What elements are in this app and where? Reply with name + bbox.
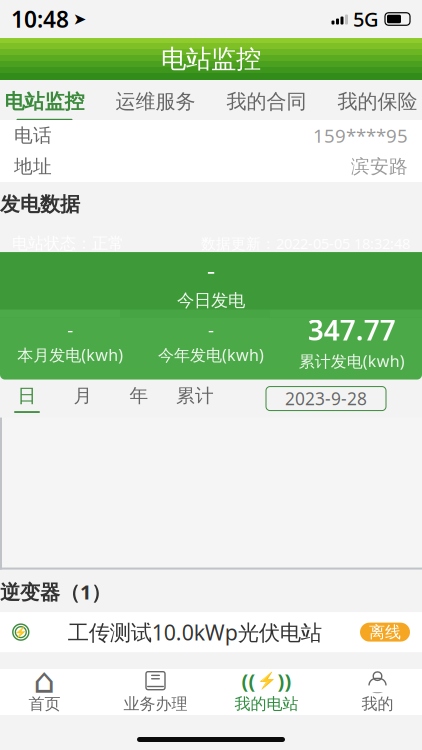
button[interactable]: ⌂ [0,669,100,715]
staticText: 我的电站 [234,694,298,714]
staticText: 逆变器（1） [0,579,111,605]
staticText: 347.77 [308,311,396,348]
button[interactable]: 我的保险 [322,79,422,121]
staticText: - [67,317,73,342]
button[interactable]: ⚡ [0,612,422,652]
staticText: 今年发电(kwh) [158,344,264,365]
staticText: - [208,317,214,342]
button[interactable]: 年 [111,384,167,413]
staticText: 电站监控 [4,89,84,114]
button[interactable]: 运维服务 [100,79,211,121]
staticText: 本月发电(kwh) [17,344,123,365]
staticText: 首页 [28,694,60,714]
staticText: 159****95 [313,123,408,148]
staticText: 数据更新：2022-05-05 18:32:48 [201,234,410,253]
staticText: 地址 [14,155,52,178]
staticText: 我的保险 [337,89,417,114]
staticText: ➤ [73,10,86,28]
staticText: 2023-9-28 [285,387,367,410]
staticText: 累计 [176,384,214,407]
staticText: 业务办理 [123,694,187,714]
staticText: 累计发电(kwh) [299,350,405,371]
button[interactable]: 日 [0,384,55,413]
staticText: 月 [73,384,92,407]
button[interactable]: 我的合同 [211,79,322,121]
button[interactable]: 月 [55,384,111,413]
staticText: - [207,253,215,287]
staticText: 离线 [369,622,401,642]
button[interactable]: 累计 [167,384,223,413]
staticText: 工传测试10.0kWp光伏电站 [68,618,322,646]
staticText: (( [241,667,255,694]
staticText: 运维服务 [115,89,195,114]
staticText: 发电数据 [0,192,80,217]
staticText: ⌂ [33,661,55,700]
staticText: 日 [17,384,36,407]
staticText: ⚡ [14,626,27,638]
staticText: 电站监控 [161,43,261,74]
staticText: 我的 [361,694,393,714]
button[interactable]: 电站监控 [0,79,100,121]
staticText: 10:48 [11,4,69,34]
button[interactable]: 业务办理 [100,669,211,715]
button[interactable]: (( [211,669,322,715]
staticText: 我的合同 [226,89,306,114]
button[interactable]: 2023-9-28 [266,387,386,411]
staticText: 电话 [14,124,52,147]
button[interactable]: 我的 [322,669,422,715]
staticText: ⚡ [256,671,276,690]
staticText: 滨安路 [351,155,408,178]
staticText: 今日发电 [177,290,245,311]
staticText: 电站状态：正常 [12,234,124,253]
staticText: )) [277,667,291,694]
staticText: 年 [129,384,148,407]
staticText: 5G [353,6,379,32]
